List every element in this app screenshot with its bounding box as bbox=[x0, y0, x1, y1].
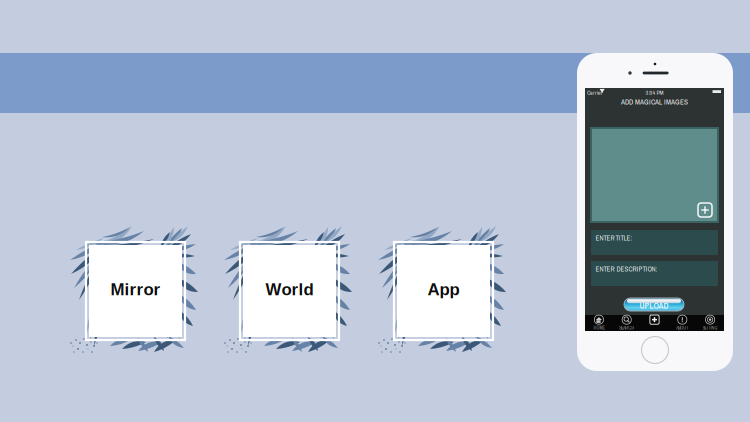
staticText: 3:04 PM bbox=[645, 89, 663, 97]
staticText: App bbox=[427, 280, 459, 299]
staticText: ADD MAGICAL IMAGES bbox=[621, 97, 688, 107]
staticText: UPLOAD bbox=[639, 300, 668, 311]
staticText: SETTING bbox=[703, 325, 718, 331]
staticText: SEARCH bbox=[619, 325, 634, 331]
staticText: ABOUT bbox=[676, 325, 688, 331]
staticText: Carrier bbox=[587, 89, 603, 97]
staticText: HOME bbox=[593, 325, 604, 331]
staticText: Mirror bbox=[110, 280, 160, 299]
button[interactable]: Add image bbox=[698, 203, 712, 217]
button[interactable]: ABOUT bbox=[668, 315, 696, 331]
staticText: ENTER TITLE: bbox=[596, 233, 633, 243]
button[interactable]: UPLOAD bbox=[624, 298, 684, 311]
staticText: ENTER DESCRIPTION: bbox=[596, 264, 658, 274]
button[interactable] bbox=[641, 315, 668, 331]
staticText: World bbox=[265, 280, 313, 299]
button[interactable]: HOME bbox=[585, 315, 613, 331]
button[interactable]: SEARCH bbox=[613, 315, 641, 331]
button[interactable]: SETTING bbox=[696, 315, 724, 331]
